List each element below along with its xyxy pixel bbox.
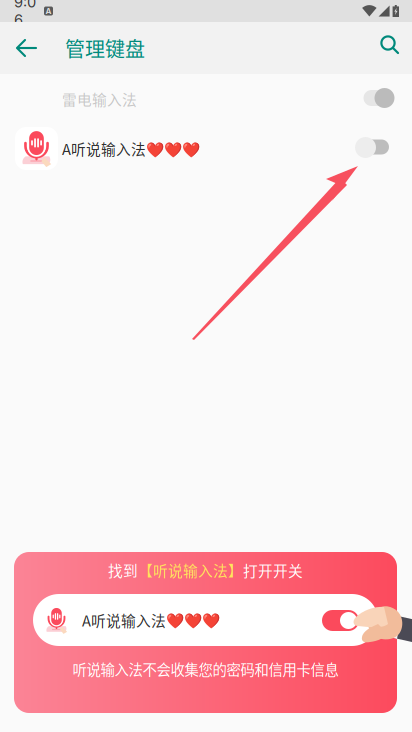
staticText: A xyxy=(45,6,51,16)
staticText: 打开开关 xyxy=(243,559,303,581)
staticText: 9:06 xyxy=(14,0,36,29)
staticText: 找到 xyxy=(108,559,138,581)
staticText: A听说输入法❤️❤️❤️ xyxy=(82,609,220,631)
staticText: A听说输入法❤️❤️❤️ xyxy=(62,138,200,159)
staticText: 管理键盘 xyxy=(65,33,145,62)
button[interactable]: Search xyxy=(357,22,409,74)
staticText: 雷电输入法 xyxy=(62,88,137,110)
button[interactable]: Back xyxy=(0,22,52,74)
button[interactable]: A听说输入法❤️❤️❤️ xyxy=(0,124,412,173)
button[interactable]: 雷电输入法 xyxy=(0,74,412,124)
staticText: 【听说输入法】 xyxy=(138,559,243,581)
staticText xyxy=(390,5,393,17)
staticText: 听说输入法不会收集您的密码和信用卡信息 xyxy=(72,659,338,679)
